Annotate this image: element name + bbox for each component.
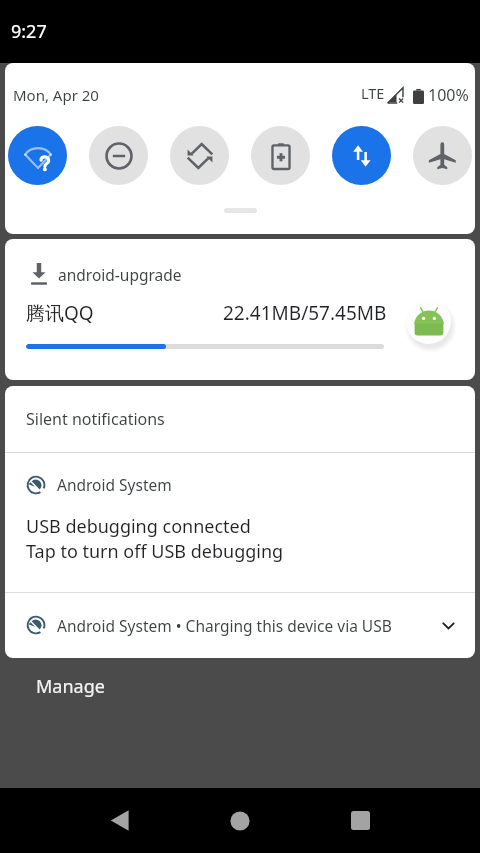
button[interactable]: Wi-Fi (8, 126, 67, 185)
staticText: android-upgrade (58, 264, 182, 285)
button[interactable]: Back (94, 788, 144, 853)
button[interactable]: Home (215, 788, 265, 853)
staticText: 腾讯QQ (26, 300, 94, 326)
button[interactable]: Recent apps (335, 788, 385, 853)
staticText: Mon, Apr 20 (13, 85, 99, 105)
staticText: Tap to turn off USB debugging (26, 539, 284, 564)
button[interactable]: Manage (24, 668, 117, 705)
staticText: 9:27 (11, 19, 47, 44)
staticText: Silent notifications (26, 408, 165, 430)
staticText: 22.41MB/57.45MB (223, 300, 387, 326)
button[interactable]: Do not disturb (89, 126, 148, 185)
button[interactable]: android-upgrade (5, 239, 475, 380)
button[interactable]: Airplane mode (413, 126, 472, 185)
staticText: Android System • Charging this device vi… (57, 615, 392, 636)
button[interactable]: Android System (5, 453, 475, 592)
button[interactable]: Mobile data (332, 126, 391, 185)
staticText: Android System (57, 474, 172, 495)
button[interactable]: Android System • Charging this device vi… (26, 593, 455, 657)
staticText: LTE (361, 83, 385, 103)
staticText: USB debugging connected (26, 514, 251, 539)
button[interactable]: Silent notifications (26, 386, 475, 452)
button[interactable]: Auto rotate (170, 126, 229, 185)
staticText: Manage (36, 674, 105, 699)
button[interactable]: Battery saver (251, 126, 310, 185)
staticText: 100% (428, 84, 469, 106)
